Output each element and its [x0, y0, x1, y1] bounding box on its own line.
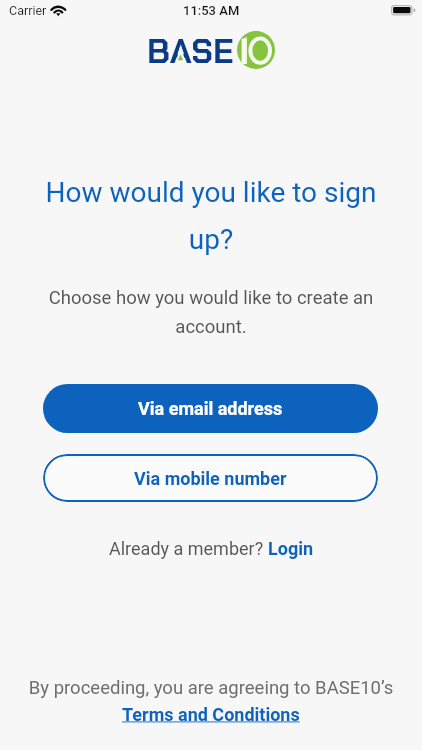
staticText: Already a member?	[109, 538, 268, 559]
staticText: Login	[268, 538, 314, 559]
other: Wi-Fi signal	[50, 3, 66, 17]
button[interactable]: Login	[268, 538, 314, 559]
button[interactable]: Terms and Conditions	[122, 704, 300, 725]
staticText: BASE	[147, 29, 234, 73]
staticText: Via email address	[138, 398, 283, 419]
staticText: 11:53 AM	[183, 3, 240, 18]
staticText: Terms and Conditions	[122, 704, 300, 725]
button[interactable]: Via mobile number	[43, 454, 378, 502]
button[interactable]: Via email address	[43, 384, 378, 433]
other: Battery full	[391, 4, 417, 17]
staticText: Carrier	[9, 3, 47, 18]
staticText: Choose how you would like to create an a…	[46, 287, 376, 337]
staticText: How would you like to sign up?	[42, 176, 380, 256]
staticText: Via mobile number	[134, 468, 287, 489]
staticText: By proceeding, you are agreeing to BASE1…	[0, 677, 422, 699]
